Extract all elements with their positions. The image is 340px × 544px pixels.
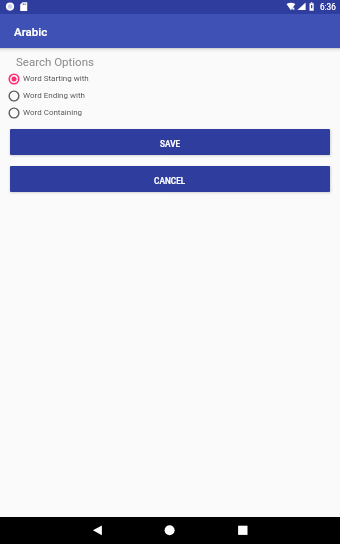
staticText: 6:36: [320, 2, 336, 12]
button[interactable]: SAVE: [10, 129, 330, 155]
button[interactable]: Word Containing: [0, 104, 340, 121]
button[interactable]: CANCEL: [10, 166, 330, 192]
staticText: Word Ending with: [23, 91, 85, 100]
staticText: SAVE: [160, 139, 181, 149]
button[interactable]: Word Ending with: [0, 87, 340, 104]
other: Navigation bar: [0, 517, 340, 544]
staticText: Search Options: [16, 55, 94, 68]
staticText: Arabic: [14, 25, 48, 38]
button[interactable]: Word Starting with: [0, 70, 340, 87]
staticText: Word Containing: [23, 108, 83, 117]
staticText: CANCEL: [154, 176, 186, 186]
staticText: Word Starting with: [23, 74, 89, 83]
